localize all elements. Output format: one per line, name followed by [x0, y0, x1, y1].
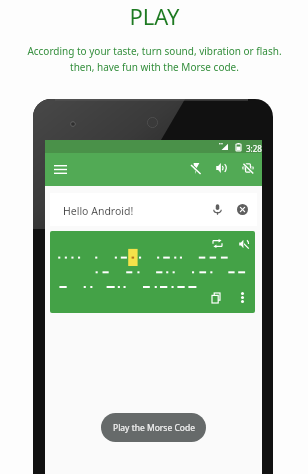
button[interactable]: Hello Android!	[50, 193, 257, 226]
staticText: Hello Android!	[63, 204, 134, 218]
button[interactable]: Play the Morse Code	[101, 413, 206, 442]
button[interactable]: Copy	[207, 288, 226, 307]
staticText: According to your taste, turn sound, vib…	[27, 44, 282, 58]
button[interactable]: More options	[233, 288, 252, 307]
button[interactable]: Flash off	[185, 157, 207, 179]
staticText: PLAY	[129, 1, 180, 31]
button[interactable]: Repeat	[208, 234, 227, 253]
button[interactable]: Mute	[234, 234, 253, 253]
button[interactable]: Clear	[232, 199, 252, 219]
button[interactable]: Menu	[49, 158, 71, 180]
staticText: then, have fun with the Morse code.	[70, 60, 239, 74]
button[interactable]: Voice input	[207, 199, 227, 219]
button[interactable]: Sound on	[210, 157, 232, 179]
button[interactable]: Vibration off	[237, 157, 259, 179]
staticText: Play the Morse Code	[113, 422, 195, 434]
staticText: 3:28	[246, 143, 262, 154]
